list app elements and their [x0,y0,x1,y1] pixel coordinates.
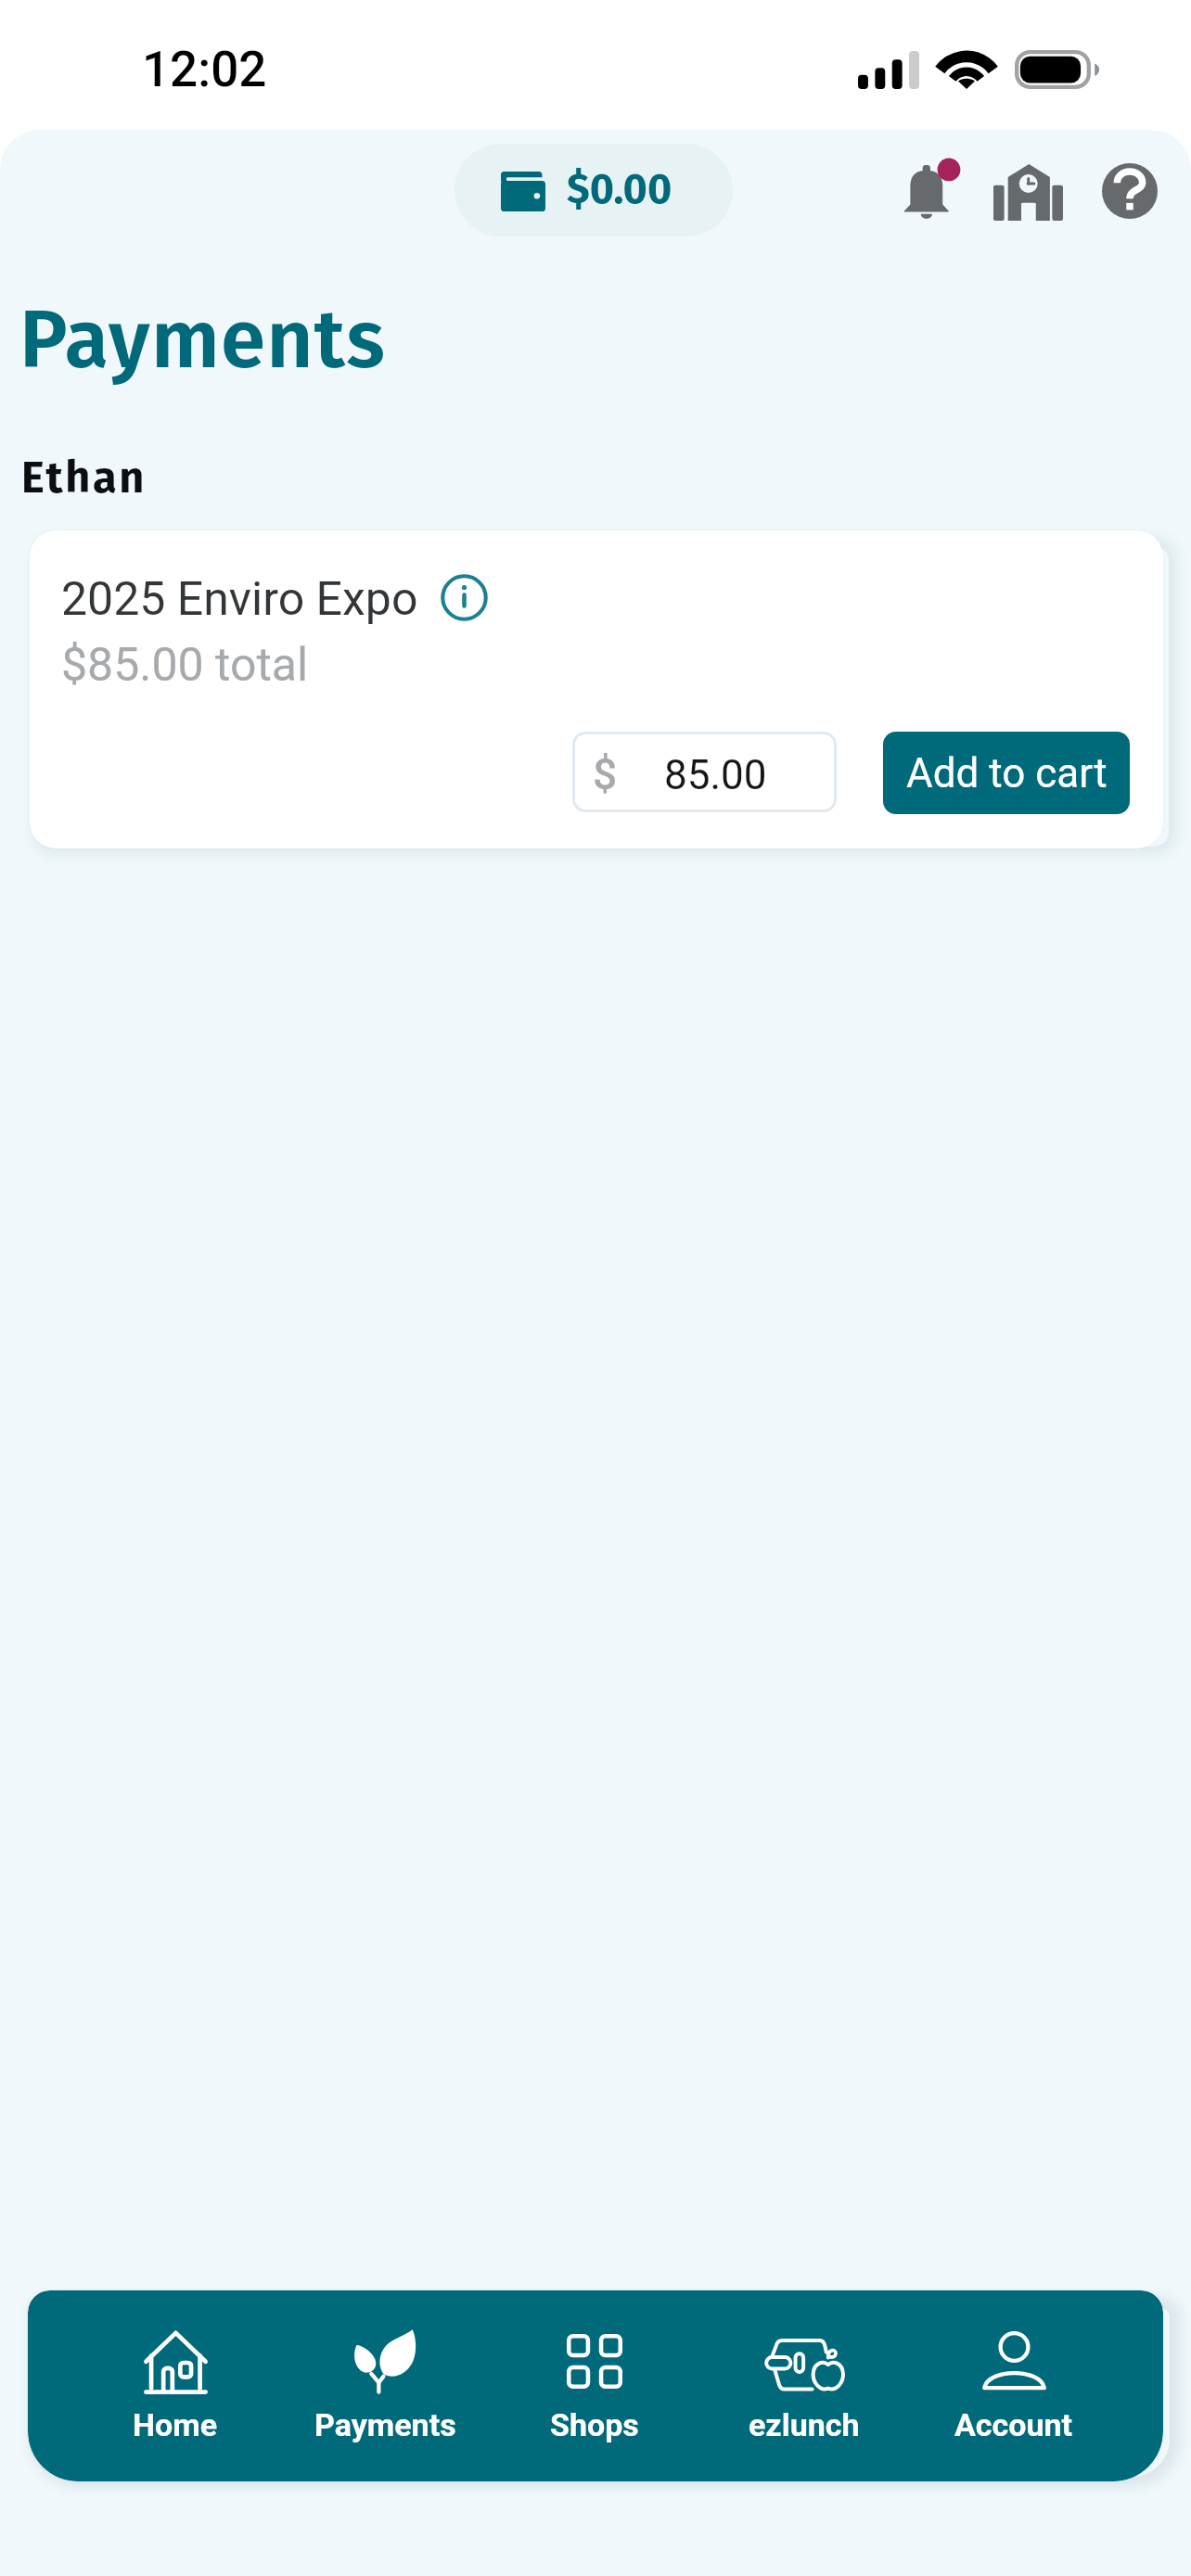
staticText: ezlunch [749,2406,860,2443]
staticText: Account [954,2406,1073,2443]
button[interactable]: School [988,164,1068,221]
button[interactable]: Shops [490,2290,699,2481]
staticText: $0.00 [567,164,672,214]
staticText: Ethan [21,452,147,504]
staticText: 12:02 [142,41,267,98]
staticText: Payments [19,292,387,389]
button[interactable]: Add to cart [883,732,1130,814]
staticText: $85.00 total [61,638,309,693]
staticText: 2025 Enviro Expo [61,572,418,627]
button[interactable]: ezlunch [699,2290,909,2481]
button[interactable]: Payments [280,2290,490,2481]
button[interactable]: $0.00 [455,144,733,236]
staticText: $ [593,749,618,799]
button[interactable]: 2025 Enviro Expo [30,530,1163,848]
button[interactable]: Notifications [892,158,972,220]
button[interactable]: Account [909,2290,1119,2481]
button[interactable]: Help [1090,151,1170,231]
staticText: 85.00 [664,751,767,799]
button[interactable]: Home [70,2290,280,2481]
staticText: Payments [314,2406,456,2443]
staticText: Shops [550,2406,639,2443]
button[interactable]: $ [572,732,837,812]
staticText: Home [133,2406,218,2443]
staticText: Add to cart [906,749,1108,797]
